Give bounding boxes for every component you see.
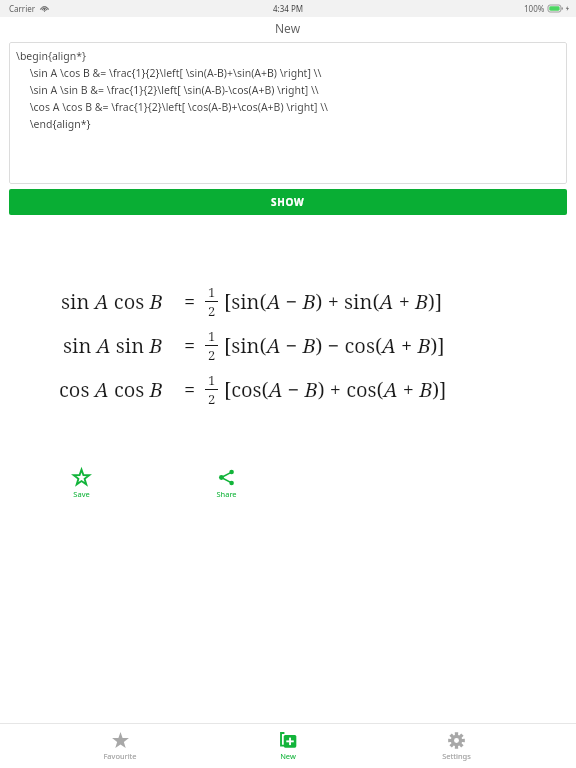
staticText: SHOW: [271, 195, 305, 209]
staticText: \begin{align*} \sin A \cos B &= \frac{1}…: [16, 49, 328, 131]
staticText: Save: [73, 489, 90, 499]
staticText: 100%: [524, 3, 545, 14]
staticText: 1: [208, 371, 216, 389]
staticText: 1: [208, 327, 216, 345]
staticText: sin A sin B: [63, 332, 163, 359]
button[interactable]: \begin{align*} \sin A \cos B &= \frac{1}…: [9, 42, 567, 184]
staticText: Favourite: [103, 751, 137, 761]
staticText: New: [280, 751, 296, 761]
staticText: Carrier: [9, 3, 36, 14]
button[interactable]: Favourite: [72, 724, 168, 768]
staticText: Settings: [442, 751, 471, 761]
staticText: 2: [208, 390, 216, 408]
staticText: New: [275, 20, 301, 36]
staticText: cos A cos B: [59, 376, 163, 403]
button[interactable]: Save: [57, 467, 105, 501]
staticText: 2: [208, 346, 216, 364]
staticText: sin A cos B: [61, 288, 163, 315]
button[interactable]: SHOW: [9, 189, 567, 215]
button[interactable]: Settings: [408, 724, 504, 768]
staticText: 4:34 PM: [273, 3, 304, 14]
button[interactable]: New: [240, 724, 336, 768]
staticText: =: [184, 376, 196, 403]
staticText: Share: [216, 489, 237, 499]
staticText: [sin(A − B) + sin(A + B)]: [224, 288, 443, 315]
staticText: =: [184, 288, 196, 315]
staticText: =: [184, 332, 196, 359]
staticText: 1: [208, 283, 216, 301]
other: Share: [218, 469, 235, 486]
staticText: 2: [208, 302, 216, 320]
staticText: [cos(A − B) + cos(A + B)]: [224, 376, 447, 403]
staticText: [sin(A − B) − cos(A + B)]: [224, 332, 445, 359]
other: Save: [73, 469, 90, 486]
button[interactable]: Share: [202, 467, 250, 501]
